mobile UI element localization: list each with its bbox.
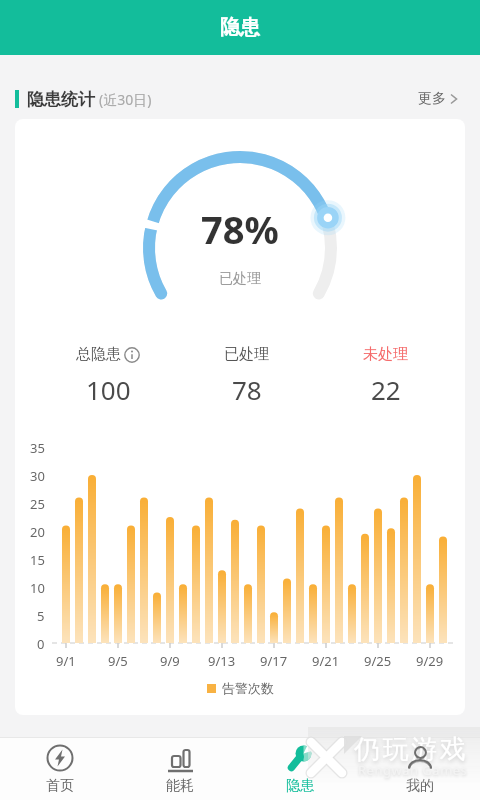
button[interactable]: 更多 [418, 90, 458, 108]
staticText: 未处理 [363, 345, 408, 364]
staticText: 25 [30, 495, 45, 513]
staticText: 已处理 [224, 345, 269, 364]
staticText: 100 [86, 372, 131, 402]
staticText: 9/1 [56, 652, 76, 670]
button[interactable]: 能耗 [120, 738, 240, 800]
staticText: 隐患 [286, 777, 314, 795]
staticText: 隐患 [220, 15, 260, 40]
staticText: 78% [201, 203, 279, 255]
staticText: 20 [30, 523, 45, 541]
button[interactable]: 隐患 [240, 738, 360, 800]
staticText: 9/25 [364, 652, 392, 670]
staticText: 10 [30, 579, 45, 597]
staticText: 我的 [406, 777, 434, 795]
staticText: 30 [30, 467, 45, 485]
staticText: Rengwan Games [358, 761, 468, 779]
staticText: 22 [371, 372, 401, 402]
staticText: 9/9 [160, 652, 180, 670]
staticText: 15 [30, 551, 45, 569]
staticText: 仍玩游戏 [353, 733, 467, 766]
staticText: (近30日) [99, 90, 152, 109]
staticText: 9/29 [416, 652, 444, 670]
staticText: 已处理 [219, 270, 261, 288]
staticText: 9/21 [312, 652, 340, 670]
button[interactable]: 首页 [0, 738, 120, 800]
staticText: 总隐患 [76, 345, 121, 364]
staticText: 更多 [418, 90, 446, 108]
staticText: 35 [30, 439, 45, 457]
staticText: 0 [37, 635, 45, 653]
staticText: 9/13 [208, 652, 236, 670]
staticText: 告警次数 [222, 680, 274, 696]
button[interactable]: 我的 [360, 738, 480, 800]
staticText: 能耗 [166, 777, 194, 795]
staticText: 隐患统计 [27, 89, 95, 110]
staticText: 78 [232, 372, 262, 402]
staticText: 5 [37, 607, 45, 625]
staticText: 9/17 [260, 652, 288, 670]
staticText: 首页 [46, 777, 74, 795]
staticText: 9/5 [108, 652, 128, 670]
